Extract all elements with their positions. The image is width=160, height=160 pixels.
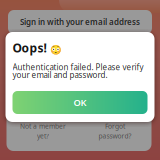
staticText: yet? (37, 131, 49, 140)
staticText: Forgot (105, 122, 125, 130)
staticText: password? (98, 131, 131, 140)
staticText: Sign in with your email address (20, 17, 140, 27)
staticText: Authentication failed. Please verify you… (12, 62, 143, 80)
staticText: Not a member (20, 122, 66, 130)
button[interactable]: OK (12, 91, 147, 114)
staticText: Oops! (12, 40, 46, 56)
staticText: OK (73, 96, 86, 109)
staticText: 😳 (49, 44, 61, 55)
